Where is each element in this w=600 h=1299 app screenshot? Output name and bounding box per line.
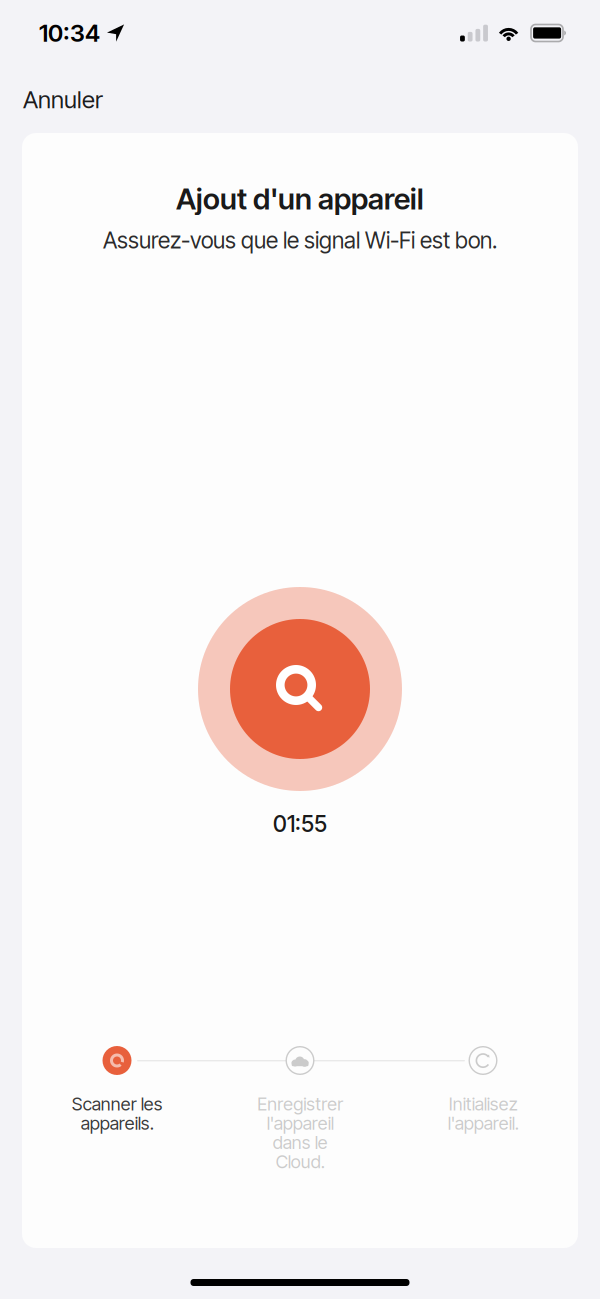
- staticText: 01:55: [273, 810, 327, 837]
- staticText: Annuler: [23, 85, 103, 114]
- button[interactable]: Annuler: [0, 73, 119, 126]
- staticText: Enregistrer l'appareil dans le Cloud.: [257, 1093, 343, 1173]
- staticText: Scanner les appareils.: [71, 1093, 162, 1134]
- staticText: 10:34: [39, 18, 100, 47]
- staticText: Initialisez l'appareil.: [447, 1093, 518, 1134]
- staticText: Ajout d'un appareil: [176, 181, 424, 216]
- staticText: Assurez-vous que le signal Wi-Fi est bon…: [103, 226, 497, 254]
